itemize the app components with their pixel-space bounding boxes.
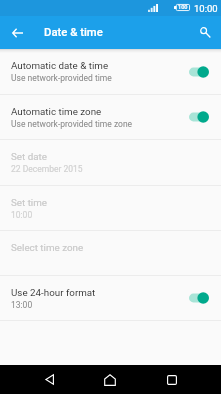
button[interactable]: Recent apps (152, 365, 192, 394)
staticText: Use network-provided time zone (11, 119, 133, 129)
staticText: Set time (11, 197, 48, 208)
button[interactable]: Automatic time zone (0, 95, 221, 139)
button[interactable]: Search (190, 16, 220, 49)
button[interactable]: Home (90, 365, 130, 394)
button[interactable]: Navigate up (0, 16, 34, 49)
staticText: 10:00 (11, 210, 33, 220)
staticText: Set date (11, 151, 47, 162)
staticText: 22 December 2015 (11, 164, 83, 174)
staticText: 100 (178, 4, 188, 11)
button[interactable]: Set date (0, 140, 221, 185)
button[interactable]: Toggle on (189, 65, 209, 79)
staticText: Use network-provided time (11, 73, 112, 83)
staticText: 10:00 (194, 3, 218, 14)
button[interactable]: Toggle on (189, 291, 209, 305)
staticText: Automatic date & time (11, 60, 109, 71)
button[interactable]: Use 24-hour format (0, 276, 221, 320)
staticText: Automatic time zone (11, 106, 102, 117)
button[interactable]: Set time (0, 186, 221, 230)
button[interactable]: Automatic date & time (0, 49, 221, 94)
button[interactable]: Select time zone (0, 231, 221, 275)
staticText: Date & time (44, 26, 103, 39)
button[interactable]: Toggle on (189, 110, 209, 124)
staticText: Select time zone (11, 242, 84, 253)
staticText: Use 24-hour format (11, 287, 96, 298)
button[interactable]: Back (29, 365, 69, 394)
staticText: 13:00 (11, 300, 33, 310)
